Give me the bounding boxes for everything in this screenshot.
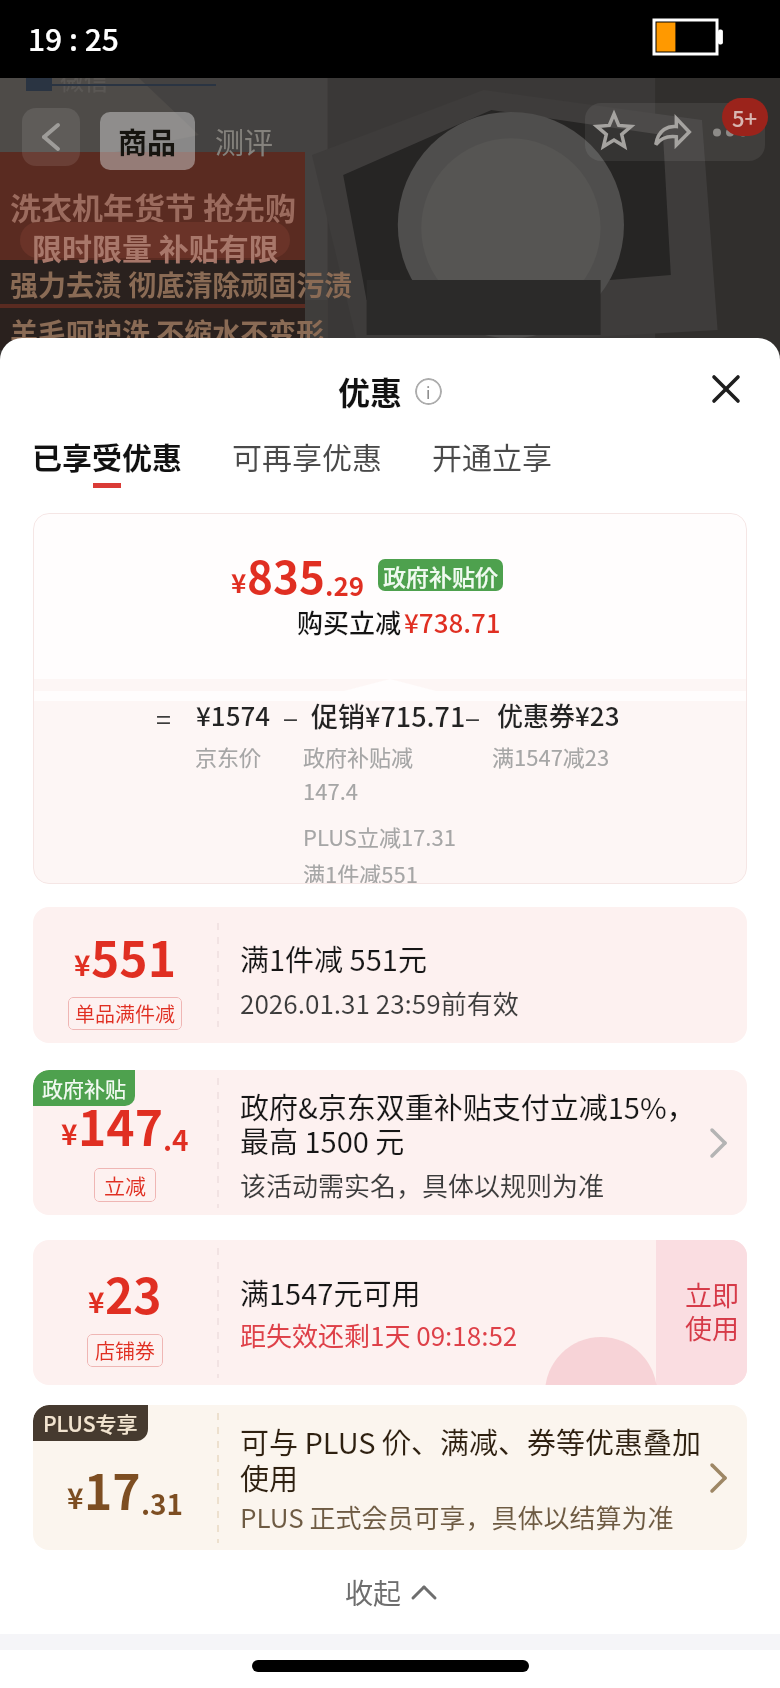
staticText: 23 (105, 1258, 162, 1328)
button[interactable]: Info (415, 378, 442, 405)
staticText: 洗衣机年货节 抢先购 (10, 184, 297, 229)
staticText: 单品满件减 (75, 999, 175, 1028)
staticText: 政府&京东双重补贴支付立减15%， (240, 1085, 696, 1127)
staticText: 收起 (345, 1572, 402, 1613)
staticText: 促销¥715.71 (311, 696, 466, 735)
staticText: i (426, 380, 431, 403)
button[interactable]: Close (698, 361, 754, 417)
button[interactable]: 商品 (118, 120, 177, 162)
staticText: 京东价 (195, 740, 262, 772)
button[interactable]: Back (22, 108, 80, 166)
staticText: ¥ (67, 1477, 84, 1518)
button[interactable]: ¥ (33, 907, 747, 1043)
button[interactable]: Share (643, 103, 701, 161)
button[interactable]: ¥ (33, 1070, 747, 1215)
staticText: 店铺券 (95, 1336, 155, 1365)
button[interactable]: 测评 (215, 120, 274, 162)
staticText: .31 (141, 1483, 184, 1524)
staticText: 满1547元可用 (240, 1271, 421, 1313)
staticText: 5+ (732, 101, 758, 133)
button[interactable]: 收起 (0, 1550, 780, 1634)
staticText: 政府补贴价 (383, 559, 498, 591)
staticText: 强力去渍 彻底清除顽固污渍 (10, 264, 315, 305)
staticText: ¥ (74, 944, 91, 985)
staticText: 羊毛呵护洗 不缩水不变形 (10, 312, 315, 353)
staticText: = (156, 699, 171, 738)
staticText: 优惠券¥23 (497, 696, 620, 734)
staticText: 微信 (60, 62, 108, 97)
staticText: 立减 (104, 1170, 146, 1200)
staticText: 17 (84, 1454, 141, 1524)
staticText: 147.4 (303, 774, 358, 806)
staticText: ¥ (61, 1113, 78, 1154)
staticText: 可再享优惠 (232, 434, 382, 477)
staticText: 可与 PLUS 价、满减、券等优惠叠加 (240, 1420, 702, 1462)
staticText: 19 : 25 (28, 16, 119, 59)
staticText: PLUS 正式会员可享，具体以结算为准 (240, 1498, 674, 1536)
staticText: .29 (325, 566, 365, 604)
staticText: ¥738.71 (404, 603, 501, 641)
button[interactable]: 可再享优惠 (232, 434, 382, 477)
staticText: 限时限量 补贴有限 (32, 225, 279, 268)
staticText: .4 (163, 1119, 189, 1160)
staticText: − (465, 699, 480, 738)
button[interactable]: Favorite (585, 103, 643, 161)
staticText: 开通立享 (432, 434, 552, 477)
staticText: 满1件减 551元 (240, 937, 427, 979)
staticText: 满1547减23 (492, 740, 610, 772)
staticText: 147 (78, 1090, 163, 1160)
staticText: 该活动需实名，具体以规则为准 (240, 1166, 605, 1204)
staticText: 使用 (685, 1308, 739, 1347)
button[interactable]: ¥ (33, 1240, 747, 1385)
staticText: 使用 (240, 1456, 299, 1498)
staticText: ¥ (231, 563, 247, 601)
staticText: 测评 (215, 120, 274, 162)
staticText: PLUS专享 (43, 1408, 138, 1438)
staticText: ¥1574 (196, 696, 271, 734)
staticText: ¥ (88, 1281, 105, 1322)
button[interactable]: ¥ (33, 1405, 747, 1550)
button[interactable]: 已享受优惠 (32, 434, 182, 488)
staticText: 距失效还剩1天 09:18:52 (240, 1316, 518, 1354)
staticText: 购买立减 (297, 603, 402, 641)
staticText: − (283, 699, 298, 738)
button[interactable]: More (701, 103, 759, 161)
staticText: 政府补贴 (42, 1073, 126, 1103)
button[interactable]: 开通立享 (432, 434, 552, 477)
staticText: PLUS立减17.31 (303, 820, 456, 852)
staticText: 2026.01.31 23:59前有效 (240, 984, 519, 1022)
staticText: 最高 1500 元 (240, 1119, 405, 1161)
staticText: 已享受优惠 (32, 434, 182, 477)
staticText: 立即 (685, 1275, 739, 1314)
staticText: 551 (91, 921, 176, 991)
staticText: 政府补贴减 (303, 740, 414, 772)
staticText: 满1件减551 (303, 857, 418, 884)
staticText: 835 (247, 543, 325, 607)
staticText: 优惠 (338, 368, 403, 414)
staticText: 商品 (118, 120, 177, 162)
